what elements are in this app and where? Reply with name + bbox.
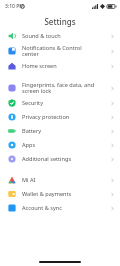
button[interactable]: Sound & touch	[0, 29, 120, 43]
staticText: Additional settings	[22, 155, 108, 163]
button[interactable]: Privacy protection	[0, 110, 120, 124]
staticText: Account & sync	[22, 204, 108, 212]
staticText: Fingerprints, face data, and screen lock	[22, 81, 108, 95]
staticText: Notifications & Control center	[22, 44, 108, 58]
staticText: Security	[22, 99, 108, 107]
staticText: Apps	[22, 141, 108, 149]
staticText: Mi AI	[22, 176, 108, 184]
staticText: Sound & touch	[22, 32, 108, 40]
staticText: 3:10 PM	[5, 3, 24, 10]
button[interactable]: Account & sync	[0, 201, 120, 215]
button[interactable]: Security	[0, 96, 120, 110]
staticText: Privacy protection	[22, 113, 108, 121]
button[interactable]: Mi AI	[0, 173, 120, 187]
staticText: Home screen	[22, 62, 108, 70]
button[interactable]: Fingerprints, face data, and screen lock	[0, 80, 120, 96]
button[interactable]: Notifications & Control center	[0, 43, 120, 59]
staticText: Wallet & payments	[22, 190, 108, 198]
button[interactable]: Additional settings	[0, 152, 120, 166]
staticText: Battery	[22, 127, 108, 135]
button[interactable]: Home screen	[0, 59, 120, 73]
button[interactable]: Apps	[0, 138, 120, 152]
button[interactable]: Wallet & payments	[0, 187, 120, 201]
button[interactable]: Battery	[0, 124, 120, 138]
staticText: Settings	[44, 16, 76, 27]
